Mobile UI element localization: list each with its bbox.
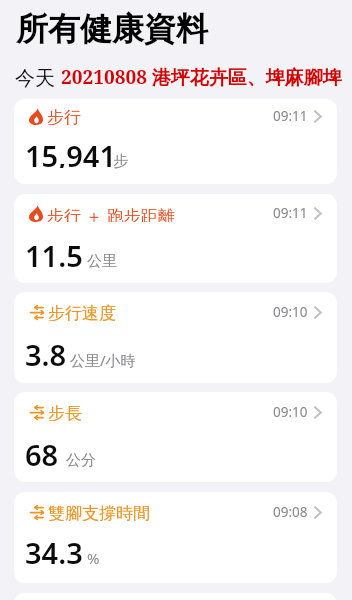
staticText: 公里/小時 (70, 350, 136, 370)
staticText: 今天 (15, 64, 61, 90)
staticText: 09:08 (273, 503, 308, 521)
staticText: 步行 ＋ 跑步距離 (47, 204, 175, 222)
staticText: 公分 (66, 451, 96, 470)
staticText: 15,941 (25, 136, 117, 168)
staticText: 20210808 港坪花卉區、埤麻腳埤 (61, 64, 342, 90)
staticText: 09:11 (273, 107, 308, 125)
staticText: 09:10 (273, 303, 308, 321)
staticText: 步行速度 (48, 303, 116, 321)
staticText: 34.3 (25, 533, 83, 565)
button[interactable]: 步行 ＋ 跑步距離 (14, 194, 337, 283)
button[interactable]: 步行 (14, 99, 337, 184)
button[interactable]: 步行速度 (14, 292, 337, 383)
staticText: 11.5 (25, 236, 83, 268)
button[interactable]: 步長 (14, 392, 337, 482)
staticText: 68 (25, 435, 59, 467)
staticText: 公里 (87, 252, 117, 271)
staticText: 雙腳支撐時間 (48, 503, 150, 521)
staticText: 3.8 (25, 335, 67, 367)
staticText: 09:10 (273, 403, 308, 421)
staticText: 步行 (47, 107, 81, 125)
staticText: % (87, 548, 100, 568)
staticText: 所有健康資料 (16, 9, 208, 49)
staticText: 09:11 (273, 204, 308, 222)
staticText: 步 (113, 152, 128, 171)
staticText: 步長 (48, 403, 82, 421)
button[interactable]: 雙腳支撐時間 (14, 492, 337, 583)
